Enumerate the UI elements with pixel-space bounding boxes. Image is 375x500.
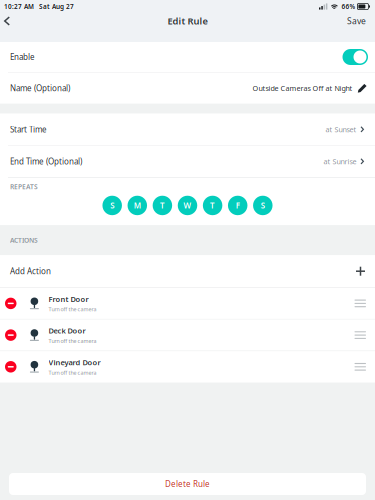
button[interactable]: Name (Optional): [0, 73, 375, 104]
staticText: Enable: [10, 52, 35, 62]
button[interactable]: Back: [0, 13, 17, 29]
staticText: at Sunset: [325, 124, 356, 134]
staticText: at Sunrise: [323, 156, 356, 166]
staticText: Turn off the camera: [48, 337, 96, 345]
staticText: Turn off the camera: [48, 369, 96, 376]
staticText: S: [110, 200, 114, 211]
staticText: M: [134, 200, 141, 211]
button[interactable]: W: [178, 196, 197, 215]
button[interactable]: Front Door: [0, 288, 375, 319]
staticText: ACTIONS: [10, 236, 38, 245]
staticText: Turn off the camera: [48, 306, 96, 313]
staticText: End Time (Optional): [10, 156, 82, 167]
button[interactable]: Delete Rule: [9, 473, 366, 495]
staticText: W: [183, 200, 191, 211]
button[interactable]: T: [153, 196, 172, 215]
staticText: Start Time: [10, 124, 47, 135]
staticText: 66%: [341, 2, 355, 11]
button[interactable]: S: [102, 196, 122, 215]
button[interactable]: Vineyard Door: [0, 351, 375, 382]
staticText: Edit Rule: [167, 15, 207, 27]
staticText: T: [160, 200, 165, 211]
button[interactable]: End Time (Optional): [0, 146, 375, 177]
button[interactable]: Start Time: [0, 114, 375, 145]
staticText: REPEATS: [10, 182, 38, 191]
staticText: Deck Door: [48, 326, 85, 336]
button[interactable]: Save: [339, 13, 375, 29]
button[interactable]: Add Action: [0, 255, 375, 287]
staticText: Delete Rule: [165, 479, 210, 489]
button[interactable]: Deck Door: [0, 320, 375, 351]
staticText: Add Action: [10, 266, 51, 277]
staticText: S: [261, 200, 265, 211]
staticText: T: [210, 200, 215, 211]
button[interactable]: T: [203, 196, 222, 215]
staticText: Save: [347, 15, 366, 27]
button[interactable]: F: [228, 196, 247, 215]
staticText: 10:27 AM: [4, 2, 34, 11]
staticText: Vineyard Door: [48, 357, 100, 367]
staticText: Sat Aug 27: [39, 2, 74, 11]
staticText: Front Door: [48, 294, 88, 304]
staticText: Outside Cameras Off at Night: [252, 83, 352, 93]
button[interactable]: M: [128, 196, 147, 215]
staticText: F: [236, 200, 240, 211]
button[interactable]: S: [253, 196, 273, 215]
button[interactable]: Enable: [0, 42, 375, 72]
staticText: Name (Optional): [10, 83, 70, 94]
